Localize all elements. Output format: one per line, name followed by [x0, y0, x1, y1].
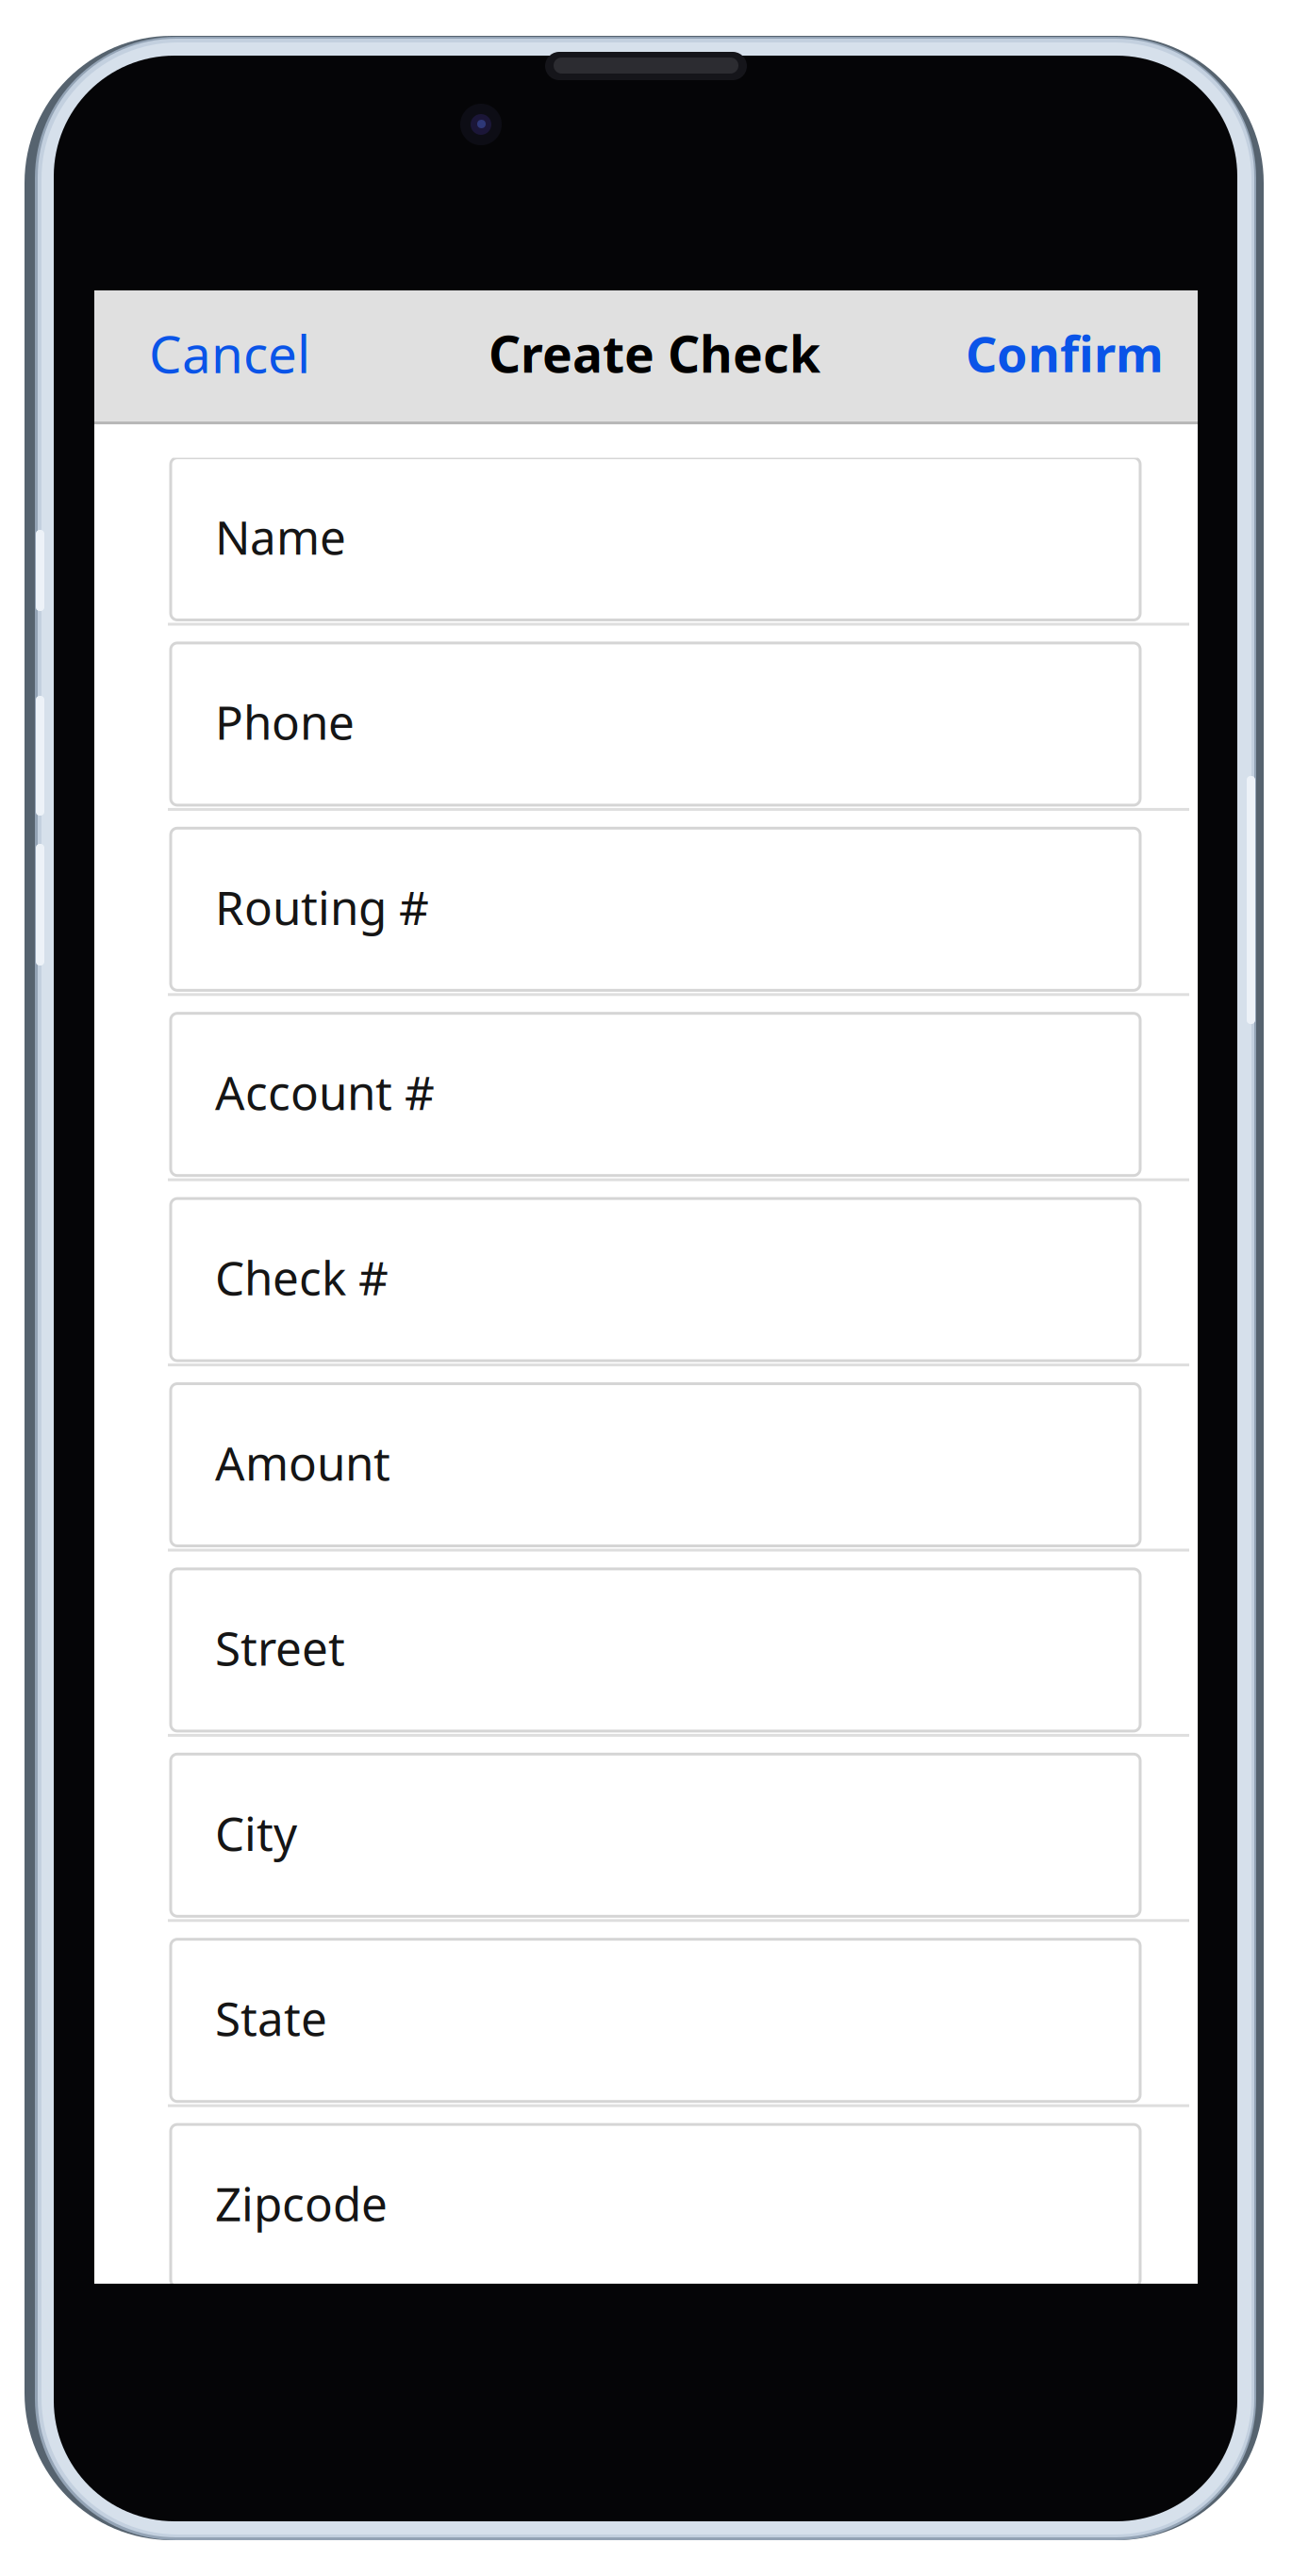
staticText: Name — [215, 506, 346, 567]
staticText: Amount — [215, 1432, 390, 1493]
staticText: Routing # — [215, 876, 429, 938]
staticText: City — [215, 1802, 297, 1864]
button[interactable]: Cancel — [149, 290, 310, 416]
button[interactable]: Name — [94, 458, 1198, 643]
staticText: Zipcode — [215, 2172, 388, 2234]
staticText: Account # — [215, 1061, 435, 1123]
button[interactable]: Amount — [94, 1384, 1198, 1569]
button[interactable]: Confirm — [966, 290, 1164, 416]
button[interactable]: Check # — [94, 1199, 1198, 1384]
button[interactable]: State — [94, 1939, 1198, 2124]
staticText: Cancel — [149, 319, 310, 387]
staticText: Phone — [215, 691, 355, 753]
staticText: Street — [215, 1617, 345, 1678]
button[interactable]: Street — [94, 1569, 1198, 1754]
button[interactable]: Zipcode — [94, 2124, 1198, 2310]
staticText: Create Check — [489, 320, 820, 386]
button[interactable]: City — [94, 1754, 1198, 1939]
button[interactable]: Phone — [94, 643, 1198, 828]
staticText: State — [215, 1987, 327, 2049]
button[interactable]: Routing # — [94, 828, 1198, 1013]
staticText: Check # — [215, 1246, 389, 1308]
button[interactable]: Account # — [94, 1013, 1198, 1199]
staticText: Confirm — [966, 321, 1164, 386]
